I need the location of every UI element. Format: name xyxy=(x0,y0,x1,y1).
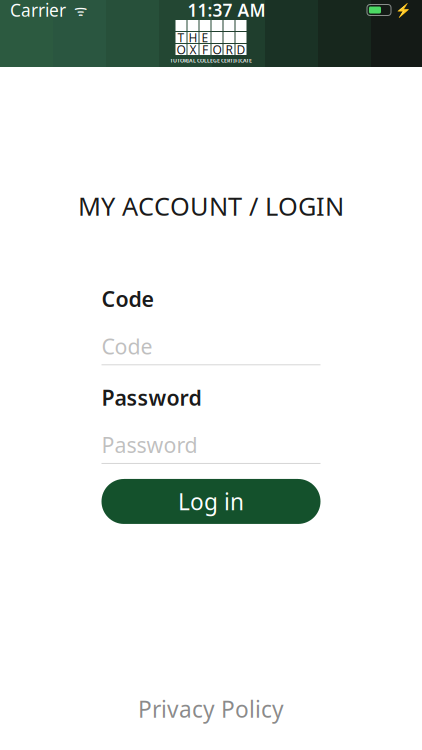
staticText: TUTORIAL COLLEGE CERTIFICATE xyxy=(170,57,252,64)
button[interactable]: Code xyxy=(101,332,320,365)
staticText: Password xyxy=(101,431,197,459)
staticText: E xyxy=(201,29,208,45)
staticText: Privacy Policy xyxy=(138,694,284,724)
staticText: ⚡ xyxy=(392,1,412,19)
staticText: D xyxy=(236,41,245,57)
staticText: R xyxy=(225,41,232,57)
button[interactable]: Log in xyxy=(101,479,320,524)
staticText: H xyxy=(188,29,197,45)
staticText: Code xyxy=(101,332,152,360)
staticText: F xyxy=(202,41,208,57)
staticText: MY ACCOUNT / LOGIN xyxy=(78,189,344,223)
staticText: Carrier xyxy=(10,0,66,21)
staticText: ᯤ xyxy=(66,0,87,20)
staticText: Log in xyxy=(178,486,244,516)
button[interactable]: Password xyxy=(101,431,320,464)
staticText: 11:37 AM xyxy=(187,0,265,21)
staticText: X xyxy=(189,41,196,57)
staticText: T xyxy=(177,29,184,45)
staticText: O xyxy=(176,41,185,57)
staticText: O xyxy=(212,41,221,57)
staticText: Code xyxy=(101,285,153,313)
button[interactable]: Privacy Policy xyxy=(114,686,308,732)
staticText: Password xyxy=(101,383,201,412)
